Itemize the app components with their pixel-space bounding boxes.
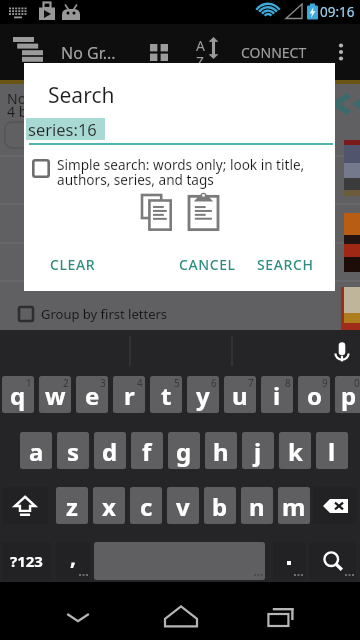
staticText: 8: [285, 376, 291, 390]
staticText: Simple search: words only; look in title…: [57, 155, 332, 189]
button[interactable]: Paste: [188, 193, 219, 230]
staticText: m: [282, 490, 306, 523]
button[interactable]: p: [335, 376, 360, 413]
staticText: h: [213, 435, 229, 468]
staticText: Z: [196, 52, 205, 71]
button[interactable]: z: [56, 487, 88, 524]
staticText: SEARCH: [257, 255, 314, 274]
button[interactable]: Sort order: [186, 24, 226, 80]
button[interactable]: Search: [309, 542, 356, 580]
button[interactable]: CONNECT: [230, 24, 318, 80]
staticText: e: [85, 379, 100, 412]
button[interactable]: Shift: [2, 487, 48, 524]
staticText: n: [249, 490, 265, 523]
staticText: c: [140, 490, 153, 523]
staticText: 3: [100, 376, 106, 390]
staticText: 1: [26, 376, 32, 390]
button[interactable]: Copy: [141, 194, 171, 230]
button[interactable]: y: [187, 376, 219, 413]
button[interactable]: c: [130, 487, 162, 524]
staticText: 5: [174, 376, 180, 390]
staticText: p: [341, 379, 357, 412]
button[interactable]: CLEAR: [40, 247, 106, 281]
button[interactable]: More options: [322, 24, 360, 80]
button[interactable]: x: [93, 487, 125, 524]
staticText: o: [307, 379, 322, 412]
button[interactable]: u: [224, 376, 256, 413]
staticText: 2: [63, 376, 69, 390]
button[interactable]: Grid view: [136, 24, 180, 80]
button[interactable]: w: [39, 376, 71, 413]
staticText: g: [176, 435, 192, 468]
button[interactable]: Comma: [56, 542, 90, 580]
staticText: d: [102, 435, 118, 468]
staticText: 6: [211, 376, 217, 390]
button[interactable]: Backspace: [313, 487, 357, 524]
button[interactable]: l: [316, 432, 348, 469]
staticText: ,: [70, 543, 76, 572]
staticText: Group by first letters: [41, 305, 168, 323]
button[interactable]: Voice input: [331, 339, 353, 367]
button[interactable]: f: [131, 432, 163, 469]
staticText: r: [124, 379, 135, 412]
staticText: CLEAR: [50, 255, 96, 274]
staticText: y: [196, 379, 210, 412]
button[interactable]: ?123: [2, 542, 51, 580]
button[interactable]: a: [20, 432, 52, 469]
button[interactable]: k: [279, 432, 311, 469]
staticText: l: [328, 435, 336, 468]
button[interactable]: h: [205, 432, 237, 469]
staticText: x: [102, 490, 116, 523]
button[interactable]: t: [150, 376, 182, 413]
staticText: Search: [48, 81, 115, 110]
button[interactable]: e: [76, 376, 108, 413]
staticText: a: [29, 435, 44, 468]
staticText: CANCEL: [179, 255, 236, 274]
staticText: ?123: [10, 551, 43, 571]
button[interactable]: CANCEL: [169, 247, 246, 281]
staticText: t: [161, 379, 172, 412]
button[interactable]: g: [168, 432, 200, 469]
button[interactable]: Grouping: [5, 24, 51, 80]
staticText: j: [254, 435, 262, 468]
button[interactable]: b: [204, 487, 236, 524]
button[interactable]: j: [242, 432, 274, 469]
button[interactable]: SEARCH: [247, 247, 324, 281]
staticText: series:16: [28, 118, 97, 140]
button[interactable]: o: [298, 376, 330, 413]
staticText: No Gr: [7, 89, 46, 108]
staticText: 4 b: [7, 102, 28, 121]
button[interactable]: Period: [273, 542, 305, 580]
button[interactable]: v: [167, 487, 199, 524]
staticText: w: [45, 379, 66, 412]
staticText: q: [10, 379, 26, 412]
staticText: i: [273, 379, 281, 412]
staticText: b: [212, 490, 228, 523]
button[interactable]: r: [113, 376, 145, 413]
staticText: 7: [248, 376, 254, 390]
button[interactable]: d: [94, 432, 126, 469]
staticText: v: [176, 490, 190, 523]
staticText: CONNECT: [241, 43, 307, 62]
staticText: f: [142, 435, 152, 468]
button[interactable]: m: [278, 487, 310, 524]
staticText: u: [232, 379, 248, 412]
staticText: 9: [322, 376, 328, 390]
staticText: 09:16: [320, 3, 355, 21]
staticText: 4: [137, 376, 143, 390]
staticText: k: [288, 435, 303, 468]
button[interactable]: q: [2, 376, 34, 413]
button[interactable]: n: [241, 487, 273, 524]
staticText: 0: [354, 376, 360, 390]
button[interactable]: i: [261, 376, 293, 413]
staticText: s: [67, 435, 80, 468]
button[interactable]: Home: [161, 596, 201, 636]
button[interactable]: s: [57, 432, 89, 469]
button[interactable]: Hide keyboard: [58, 596, 98, 636]
staticText: A: [196, 36, 205, 55]
staticText: No Gr...: [61, 42, 116, 64]
staticText: z: [66, 490, 78, 523]
button[interactable]: Recent apps: [262, 596, 302, 636]
